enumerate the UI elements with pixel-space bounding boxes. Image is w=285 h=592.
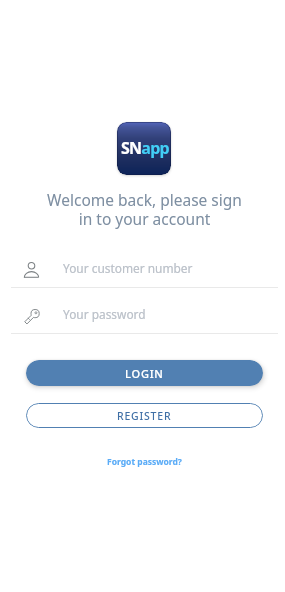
button[interactable]: Customer number	[11, 256, 278, 287]
button[interactable]: REGISTER	[26, 403, 263, 428]
other: Customer number	[24, 262, 39, 278]
staticText: SNapp	[121, 137, 169, 159]
button[interactable]: LOGIN	[26, 360, 263, 386]
staticText: REGISTER	[117, 409, 172, 423]
staticText: Forgot password?	[107, 456, 182, 468]
other: Password	[24, 308, 40, 323]
staticText: Your password	[63, 306, 146, 322]
button[interactable]: Forgot password?	[101, 452, 188, 472]
staticText: LOGIN	[125, 366, 164, 381]
button[interactable]: Password	[11, 302, 278, 333]
staticText: Welcome back, please sign in to your acc…	[2, 189, 285, 230]
staticText: Your customer number	[63, 260, 193, 276]
